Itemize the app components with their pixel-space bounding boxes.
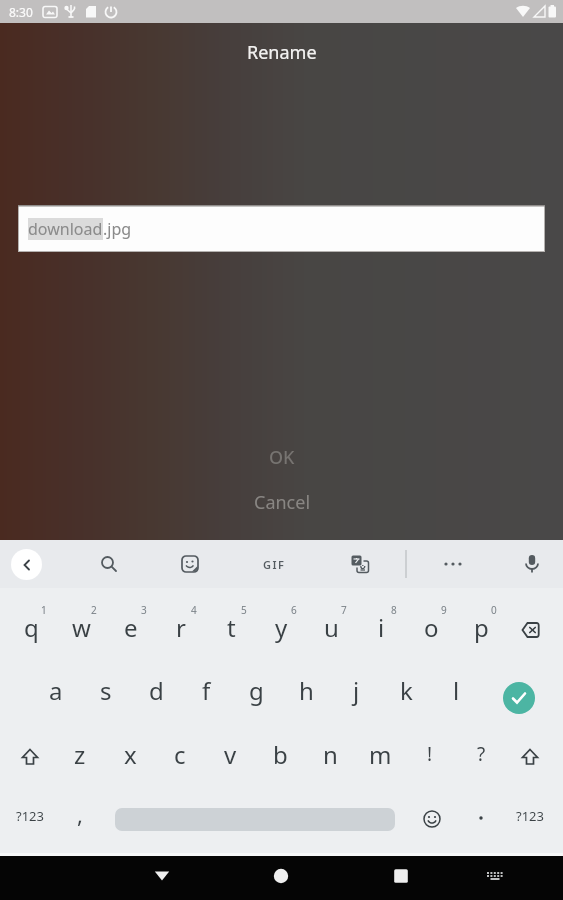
staticText: !: [427, 741, 433, 767]
button[interactable]: [340, 544, 380, 584]
button[interactable]: j: [333, 667, 379, 719]
staticText: b: [273, 738, 288, 771]
button[interactable]: l: [433, 667, 479, 719]
button[interactable]: download: [18, 205, 545, 252]
button[interactable]: [471, 806, 491, 830]
staticText: Rename: [247, 40, 317, 65]
staticText: 7: [341, 603, 347, 617]
staticText: OK: [269, 445, 295, 470]
button[interactable]: c: [157, 731, 203, 783]
staticText: e: [124, 611, 138, 644]
staticText: 0: [491, 603, 497, 617]
staticText: download: [28, 218, 103, 240]
staticText: w: [72, 611, 91, 644]
button[interactable]: t: [208, 604, 254, 656]
staticText: 1: [41, 603, 47, 617]
staticText: ,: [77, 799, 83, 829]
button[interactable]: [170, 544, 210, 584]
staticText: ?: [477, 741, 486, 767]
button[interactable]: [412, 797, 452, 841]
staticText: 2: [91, 603, 97, 617]
button[interactable]: z: [57, 731, 103, 783]
button[interactable]: i: [358, 604, 404, 656]
button[interactable]: m: [357, 731, 403, 783]
button[interactable]: [11, 549, 42, 580]
button[interactable]: k: [383, 667, 429, 719]
staticText: n: [323, 738, 338, 771]
button[interactable]: x: [107, 731, 153, 783]
staticText: k: [400, 674, 413, 707]
staticText: t: [227, 611, 236, 644]
button[interactable]: GIF: [252, 544, 296, 584]
staticText: x: [124, 738, 137, 771]
staticText: c: [174, 738, 186, 771]
staticText: y: [275, 611, 288, 644]
button[interactable]: b: [257, 731, 303, 783]
staticText: r: [176, 611, 186, 644]
button[interactable]: [140, 856, 184, 896]
button[interactable]: q: [8, 604, 54, 656]
staticText: j: [353, 674, 360, 707]
button[interactable]: [512, 544, 552, 584]
button[interactable]: [259, 856, 303, 896]
staticText: ?123: [16, 807, 44, 825]
staticText: a: [49, 674, 63, 707]
button[interactable]: n: [307, 731, 353, 783]
button[interactable]: ?123: [7, 793, 53, 845]
button[interactable]: s: [83, 667, 129, 719]
staticText: 4: [191, 603, 197, 617]
staticText: g: [249, 674, 264, 707]
button[interactable]: y: [258, 604, 304, 656]
staticText: o: [424, 611, 439, 644]
staticText: h: [299, 674, 314, 707]
button[interactable]: h: [283, 667, 329, 719]
button[interactable]: f: [183, 667, 229, 719]
staticText: 3: [141, 603, 147, 617]
staticText: ?123: [516, 807, 544, 825]
staticText: d: [149, 674, 164, 707]
button[interactable]: r: [158, 604, 204, 656]
button[interactable]: [89, 544, 129, 584]
staticText: f: [202, 674, 211, 707]
button[interactable]: ?123: [507, 793, 553, 845]
button[interactable]: [507, 731, 553, 783]
staticText: i: [378, 611, 385, 644]
staticText: q: [24, 611, 39, 644]
button[interactable]: g: [233, 667, 279, 719]
button[interactable]: [503, 682, 535, 714]
button[interactable]: Cancel: [222, 485, 342, 519]
button[interactable]: [379, 856, 423, 896]
button[interactable]: a: [33, 667, 79, 719]
button[interactable]: OK: [232, 440, 332, 474]
button[interactable]: [433, 544, 473, 584]
staticText: Cancel: [254, 490, 311, 515]
staticText: v: [224, 738, 237, 771]
button[interactable]: ?: [458, 731, 504, 783]
button[interactable]: d: [133, 667, 179, 719]
button[interactable]: ,: [57, 791, 103, 843]
button[interactable]: [477, 860, 513, 896]
staticText: u: [324, 611, 339, 644]
staticText: 8:30: [9, 4, 33, 20]
staticText: l: [453, 674, 460, 707]
button[interactable]: [508, 604, 554, 656]
staticText: 9: [441, 603, 447, 617]
staticText: 6: [291, 603, 297, 617]
button[interactable]: e: [108, 604, 154, 656]
button[interactable]: p: [458, 604, 504, 656]
button[interactable]: v: [207, 731, 253, 783]
button[interactable]: [7, 731, 53, 783]
button[interactable]: o: [408, 604, 454, 656]
staticText: GIF: [263, 557, 286, 572]
staticText: m: [369, 738, 392, 771]
button[interactable]: !: [407, 731, 453, 783]
staticText: 8: [391, 603, 397, 617]
staticText: s: [100, 674, 112, 707]
staticText: 5: [241, 603, 247, 617]
staticText: p: [474, 611, 489, 644]
staticText: z: [74, 738, 86, 771]
button[interactable]: u: [308, 604, 354, 656]
button[interactable]: w: [58, 604, 104, 656]
staticText: .jpg: [103, 218, 132, 240]
